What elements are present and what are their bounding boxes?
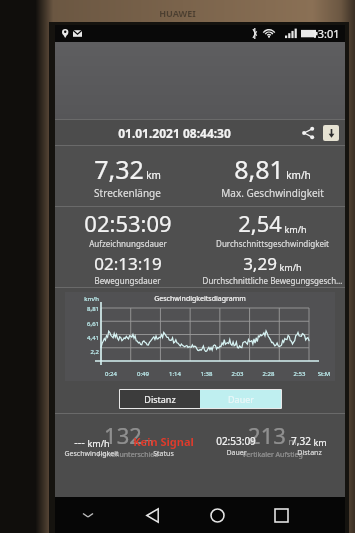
staticText: 8,81 — [234, 152, 284, 186]
staticText: Max. Geschwindigkeit — [221, 186, 324, 200]
staticText: 2,2 — [65, 348, 99, 356]
staticText: km — [313, 436, 327, 448]
staticText: Distanz — [144, 393, 176, 405]
staticText: Durchschnittsgeschwindigkeit — [216, 238, 329, 249]
staticText: Höhenunterschied — [97, 450, 159, 460]
staticText: 7,32 — [291, 434, 311, 448]
staticText: 02:53:09 — [216, 434, 256, 448]
staticText: Durchschnittliche Bewegungsgeschwin… — [200, 275, 345, 286]
staticText: m — [144, 435, 153, 447]
staticText: 3,29 — [243, 252, 277, 275]
staticText: km/h — [284, 223, 307, 235]
button[interactable]: Distanz — [120, 390, 200, 408]
button[interactable]: Dauer — [200, 390, 281, 408]
button[interactable]: Share — [293, 120, 323, 145]
staticText: 1:14 — [159, 370, 191, 378]
staticText: Geschwindigkeitsdiagramm — [154, 294, 246, 304]
staticText: 02:53:09 — [84, 208, 172, 238]
button[interactable]: Back — [120, 497, 185, 533]
staticText: km/h — [286, 168, 311, 182]
staticText: 6,61 — [65, 320, 99, 328]
staticText: Vertikaler Aufstieg — [242, 450, 303, 460]
staticText: Streckenlänge — [94, 186, 161, 200]
staticText: HUAWEI — [159, 7, 196, 19]
staticText: St:M — [315, 370, 333, 378]
staticText: Kein Signal — [133, 434, 194, 449]
staticText: 02:13:19 — [94, 252, 162, 275]
staticText: km/h — [65, 295, 99, 303]
staticText: Geschwindigkeit — [64, 449, 119, 459]
staticText: km — [146, 168, 161, 182]
staticText: 132 — [104, 420, 142, 450]
staticText: 8,81 — [65, 305, 99, 313]
staticText: 7,32 — [94, 152, 144, 186]
staticText: 1:38 — [191, 370, 222, 378]
staticText: Status — [153, 449, 174, 459]
button[interactable]: Hide navigation bar — [55, 497, 120, 533]
staticText: 13:01 — [311, 26, 340, 41]
staticText: m — [288, 435, 297, 447]
staticText: Aufzeichnungsdauer — [89, 238, 167, 249]
staticText: 01.01.2021 08:44:30 — [118, 125, 231, 141]
staticText: Bewegungsdauer — [94, 275, 161, 286]
staticText: 2:03 — [222, 370, 253, 378]
button[interactable]: Recent apps — [249, 497, 313, 533]
staticText: 2:53 — [284, 370, 315, 378]
staticText: 213 — [248, 420, 286, 450]
button[interactable]: Home — [185, 497, 249, 533]
staticText: 0:24 — [95, 370, 127, 378]
staticText: km/h — [87, 437, 110, 449]
staticText: Distanz — [297, 448, 322, 458]
staticText: --- — [74, 434, 85, 449]
staticText: km/h — [279, 261, 302, 273]
staticText: Dauer — [228, 393, 254, 405]
staticText: 2,54 — [238, 208, 282, 238]
button[interactable]: Export — [323, 125, 339, 141]
staticText: 4,41 — [65, 334, 99, 342]
staticText: 2:28 — [253, 370, 284, 378]
staticText: Dauer — [226, 448, 247, 458]
staticText: 0:49 — [127, 370, 159, 378]
